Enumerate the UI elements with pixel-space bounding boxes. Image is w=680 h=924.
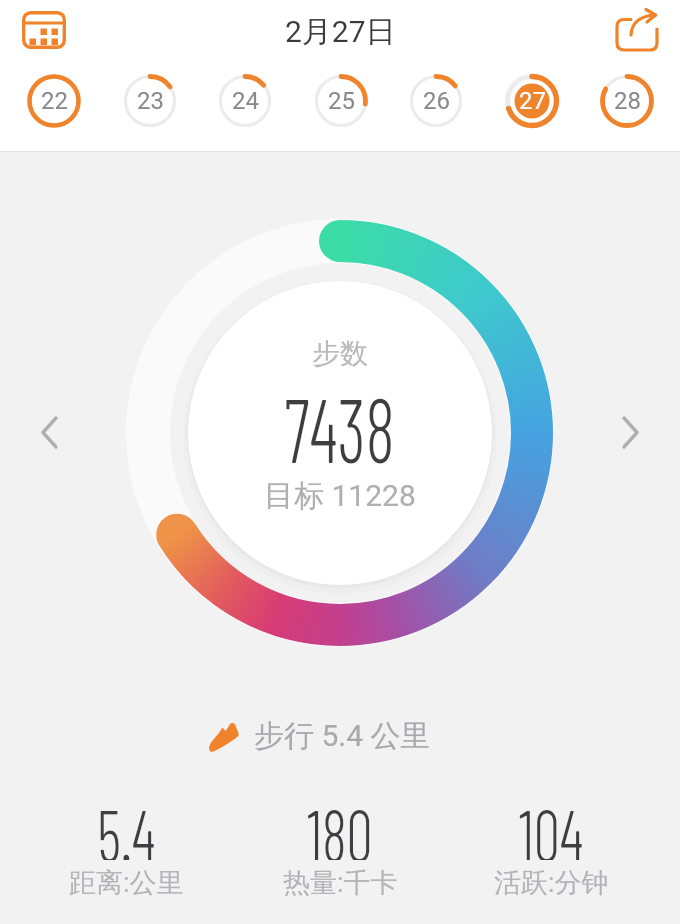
button[interactable]: 27 — [505, 74, 559, 128]
button[interactable]: 22 — [27, 74, 81, 128]
button[interactable]: 25 — [314, 74, 368, 128]
staticText: 活跃:分钟 — [494, 866, 609, 898]
button[interactable]: 28 — [600, 74, 654, 128]
staticText: 23 — [137, 87, 164, 115]
staticText: 步行 5.4 公里 — [254, 717, 431, 755]
staticText: 28 — [614, 87, 641, 115]
button[interactable]: 23 — [123, 74, 177, 128]
staticText: 目标 11228 — [264, 477, 416, 515]
staticText: 5.4 — [97, 790, 155, 860]
staticText: 25 — [328, 87, 355, 115]
staticText: 180 — [307, 790, 373, 860]
staticText: 7438 — [285, 373, 395, 481]
staticText: 距离:公里 — [69, 866, 184, 898]
button[interactable] — [34, 412, 64, 452]
staticText: 2月27日 — [285, 13, 396, 51]
staticText: 27 — [519, 87, 546, 115]
button[interactable] — [616, 412, 646, 452]
button[interactable]: 26 — [409, 74, 463, 128]
staticText: 26 — [423, 87, 450, 115]
button[interactable] — [22, 11, 66, 49]
staticText: 步数 — [312, 336, 368, 371]
staticText: 24 — [232, 87, 259, 115]
button[interactable] — [613, 8, 661, 54]
button[interactable]: 24 — [218, 74, 272, 128]
staticText: 22 — [41, 87, 68, 115]
staticText: 104 — [519, 790, 584, 860]
staticText: 热量:千卡 — [283, 866, 398, 898]
